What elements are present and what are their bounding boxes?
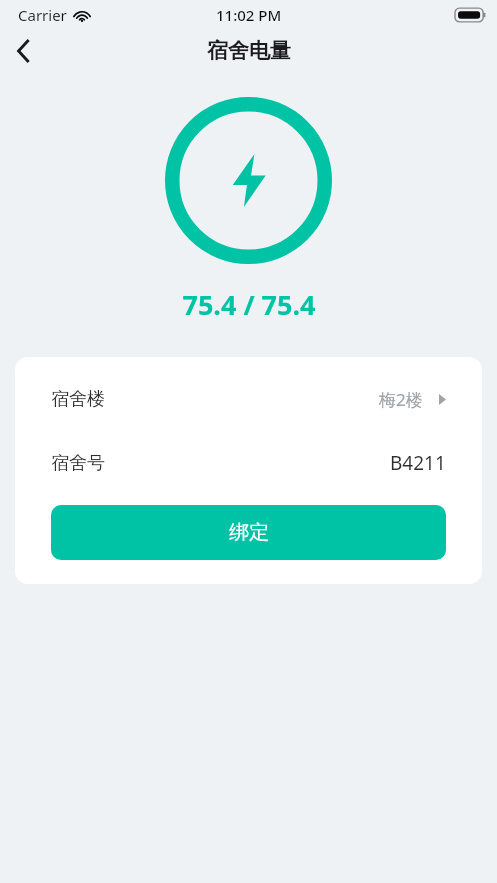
- staticText: 宿舍电量: [207, 38, 291, 64]
- staticText: 75.4 / 75.4: [182, 286, 316, 323]
- staticText: 宿舍号: [51, 452, 105, 475]
- staticText: 梅2楼: [379, 388, 423, 411]
- button[interactable]: 绑定: [51, 505, 446, 560]
- staticText: 11:02 PM: [216, 5, 282, 25]
- staticText: Carrier: [18, 5, 67, 25]
- staticText: B4211: [390, 450, 446, 476]
- button[interactable]: Back: [0, 30, 46, 72]
- staticText: 绑定: [229, 520, 269, 545]
- staticText: 宿舍楼: [51, 388, 105, 411]
- button[interactable]: 宿舍楼: [51, 379, 446, 419]
